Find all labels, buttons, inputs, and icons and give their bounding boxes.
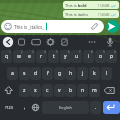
staticText: x bbox=[34, 87, 37, 94]
staticText: w bbox=[17, 53, 21, 60]
staticText: 6 bbox=[68, 50, 70, 54]
staticText: v bbox=[58, 87, 61, 94]
staticText: u bbox=[75, 53, 79, 60]
button[interactable]: n bbox=[77, 84, 88, 97]
staticText: This is bold bbox=[65, 3, 87, 8]
staticText: s bbox=[23, 70, 26, 77]
staticText: 11:40 AM bbox=[98, 4, 110, 8]
button[interactable]: c bbox=[42, 84, 53, 97]
staticText: 0 bbox=[114, 50, 116, 54]
staticText: n bbox=[81, 87, 85, 94]
staticText: a bbox=[11, 70, 14, 77]
button[interactable]: u bbox=[71, 50, 82, 63]
staticText: b bbox=[69, 87, 73, 94]
button[interactable]: . bbox=[90, 101, 101, 114]
staticText: r bbox=[40, 53, 43, 60]
button[interactable]: x bbox=[30, 84, 41, 97]
button[interactable]: i bbox=[83, 50, 94, 63]
button[interactable]: e bbox=[24, 50, 35, 63]
staticText: 5 bbox=[56, 50, 58, 54]
button[interactable]: m bbox=[89, 84, 100, 97]
button[interactable]: y bbox=[60, 50, 71, 63]
button[interactable] bbox=[1, 84, 17, 97]
staticText: 2 bbox=[21, 50, 23, 54]
button[interactable]: v bbox=[54, 84, 65, 97]
button[interactable] bbox=[30, 101, 41, 114]
staticText: . bbox=[95, 104, 97, 111]
button[interactable] bbox=[103, 101, 120, 114]
staticText: o bbox=[99, 53, 103, 60]
staticText: This is italics bbox=[65, 12, 88, 17]
staticText: c bbox=[46, 87, 49, 94]
button[interactable]: f bbox=[42, 67, 53, 80]
button[interactable]: , bbox=[19, 101, 30, 114]
staticText: 11:40 AM bbox=[98, 13, 110, 17]
button[interactable]: p bbox=[106, 50, 117, 63]
staticText: z bbox=[23, 87, 26, 94]
button[interactable]: b bbox=[65, 84, 76, 97]
button[interactable]: ?123 bbox=[1, 101, 17, 114]
staticText: 9 bbox=[103, 50, 105, 54]
staticText: 3 bbox=[32, 50, 34, 54]
button[interactable]: q bbox=[1, 50, 12, 63]
staticText: This is _italics_ bbox=[14, 24, 45, 30]
button[interactable]: This is italics bbox=[63, 10, 119, 18]
staticText: p bbox=[110, 53, 114, 60]
button[interactable]: a bbox=[7, 67, 18, 80]
staticText: q bbox=[5, 53, 9, 60]
button[interactable]: l bbox=[101, 67, 112, 80]
staticText: i bbox=[88, 53, 90, 60]
staticText: m bbox=[92, 87, 97, 94]
staticText: 4 bbox=[44, 50, 46, 54]
staticText: 7 bbox=[79, 50, 81, 54]
staticText: g bbox=[58, 70, 62, 77]
staticText: ?123 bbox=[5, 105, 13, 110]
button[interactable]: h bbox=[65, 67, 76, 80]
button[interactable]: s bbox=[19, 67, 30, 80]
staticText: 1 bbox=[9, 50, 11, 54]
button[interactable]: j bbox=[77, 67, 88, 80]
button[interactable]: English bbox=[42, 101, 89, 114]
button[interactable] bbox=[101, 84, 119, 97]
staticText: t bbox=[53, 53, 55, 60]
staticText: e bbox=[28, 53, 31, 60]
button[interactable]: t bbox=[48, 50, 59, 63]
button[interactable]: z bbox=[19, 84, 30, 97]
staticText: y bbox=[64, 53, 67, 60]
staticText: h bbox=[69, 70, 73, 77]
button[interactable]: This is bold bbox=[63, 1, 119, 9]
staticText: j bbox=[82, 70, 84, 77]
button[interactable]: This is _italics_ bbox=[1, 20, 104, 33]
button[interactable]: o bbox=[95, 50, 106, 63]
button[interactable]: r bbox=[36, 50, 47, 63]
staticText: , bbox=[24, 104, 26, 111]
button[interactable]: w bbox=[13, 50, 24, 63]
staticText: k bbox=[93, 70, 96, 77]
staticText: 8 bbox=[91, 50, 93, 54]
button[interactable] bbox=[106, 20, 119, 33]
button[interactable]: k bbox=[89, 67, 100, 80]
button[interactable]: g bbox=[54, 67, 65, 80]
staticText: l bbox=[106, 70, 108, 77]
button[interactable]: d bbox=[30, 67, 41, 80]
staticText: f bbox=[47, 70, 49, 77]
staticText: English bbox=[59, 105, 72, 110]
staticText: d bbox=[34, 70, 38, 77]
